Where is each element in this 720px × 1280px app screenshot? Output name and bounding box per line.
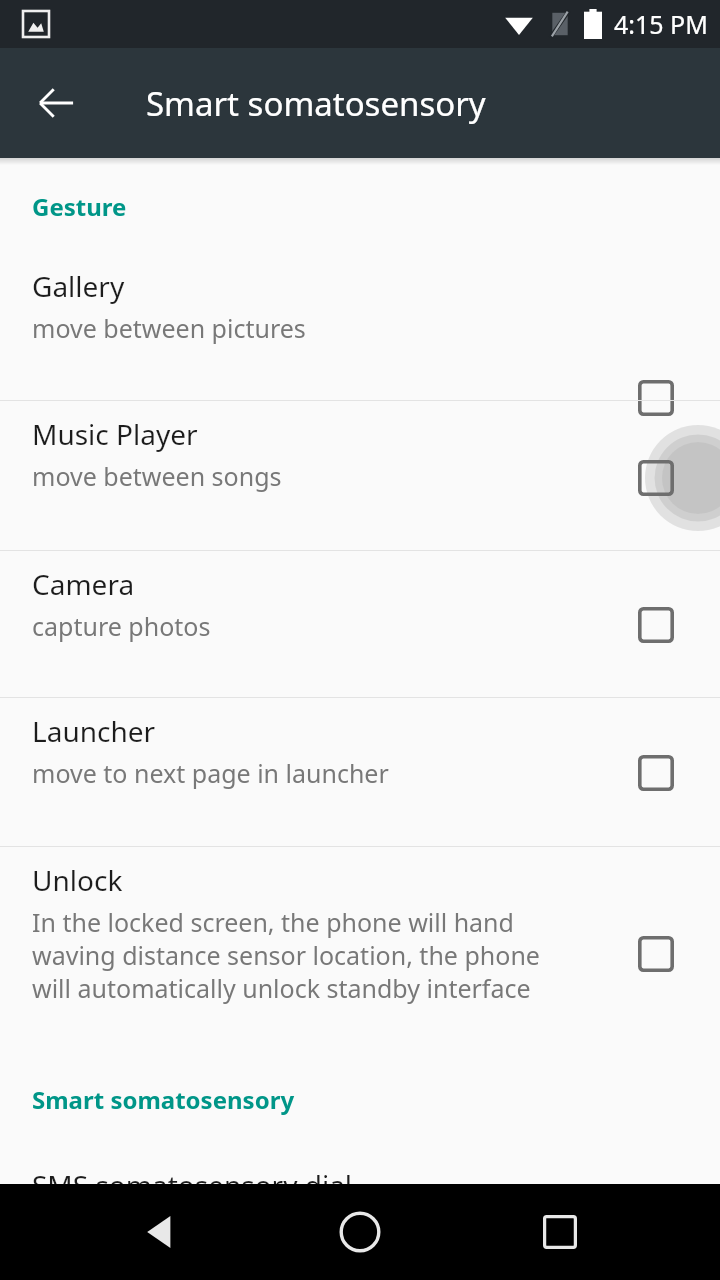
button[interactable]: Music Player checkbox <box>638 460 674 496</box>
staticText: move between pictures <box>32 311 632 345</box>
staticText: move to next page in launcher <box>32 756 632 790</box>
button[interactable]: SMS somatosensory dial <box>0 1146 720 1184</box>
button[interactable]: Music Player <box>0 401 720 550</box>
staticText: Smart somatosensory <box>32 1083 295 1116</box>
button[interactable]: Gallery checkbox <box>638 380 674 416</box>
staticText: Gallery <box>32 267 125 305</box>
staticText: Music Player <box>32 415 198 453</box>
staticText: Smart somatosensory <box>146 81 486 126</box>
button[interactable]: Launcher checkbox <box>638 755 674 791</box>
button[interactable]: Unlock <box>0 847 720 1037</box>
button[interactable]: Gallery <box>0 253 720 400</box>
staticText: In the locked screen, the phone will han… <box>32 905 577 1005</box>
button[interactable]: Camera checkbox <box>638 607 674 643</box>
button[interactable]: Launcher <box>0 698 720 846</box>
staticText: SMS somatosensory dial <box>32 1166 353 1204</box>
button[interactable]: Back <box>12 59 100 147</box>
staticText: move between songs <box>32 459 632 493</box>
staticText: capture photos <box>32 609 632 643</box>
button[interactable]: Camera <box>0 551 720 697</box>
button[interactable]: Recent apps <box>512 1184 608 1280</box>
staticText: Unlock <box>32 861 123 899</box>
staticText: 4:15 PM <box>614 7 708 41</box>
staticText: Camera <box>32 565 135 603</box>
staticText: Gesture <box>32 190 127 223</box>
button[interactable]: Back <box>112 1184 208 1280</box>
button[interactable]: Home <box>312 1184 408 1280</box>
staticText: Launcher <box>32 712 156 750</box>
button[interactable]: Unlock checkbox <box>638 936 674 972</box>
